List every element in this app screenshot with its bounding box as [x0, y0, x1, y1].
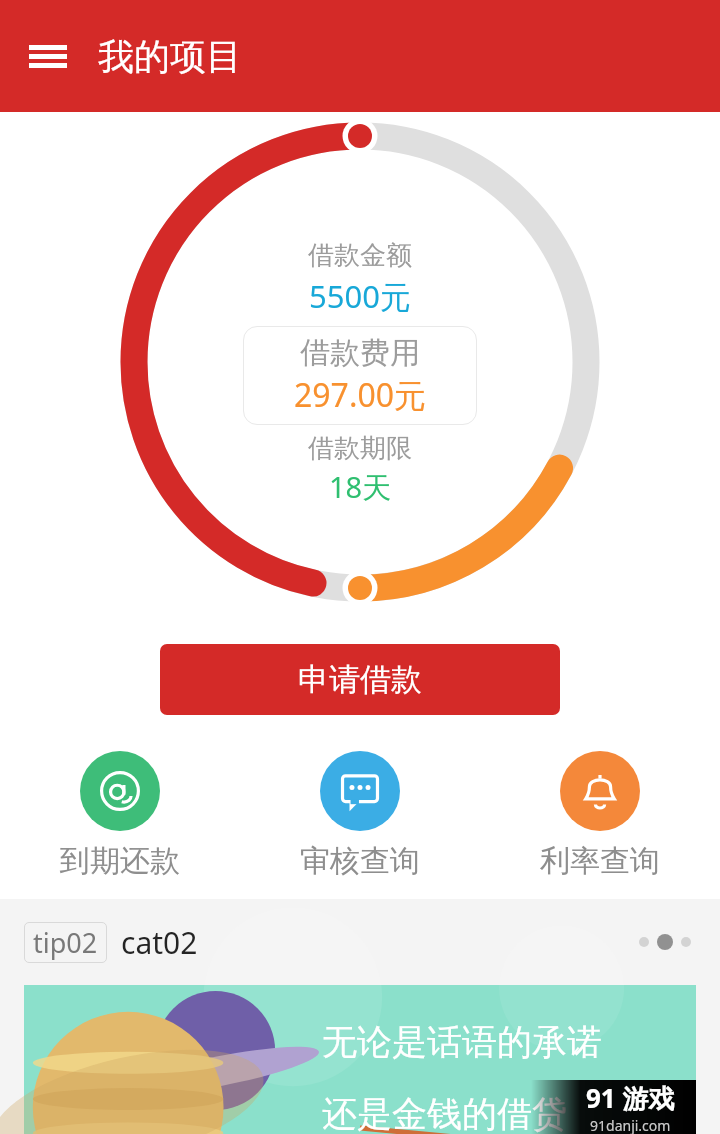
staticText: 审核查询: [300, 842, 420, 880]
staticText: 借款金额: [308, 239, 412, 272]
button[interactable]: 审核查询: [240, 751, 480, 880]
button[interactable]: 申请借款: [160, 644, 560, 715]
staticText: 297.00元: [294, 373, 427, 417]
staticText: 借款期限: [308, 432, 412, 465]
staticText: 还是金钱的借贷: [322, 1092, 567, 1134]
staticText: cat02: [121, 922, 198, 963]
staticText: 借款费用: [300, 334, 420, 372]
button[interactable]: Promotional banner: [24, 985, 696, 1134]
staticText: 18天: [329, 467, 392, 507]
button[interactable]: Open navigation menu: [18, 26, 78, 86]
staticText: 91 游戏: [586, 1080, 675, 1116]
button[interactable]: [634, 933, 696, 951]
staticText: 5500元: [309, 275, 411, 317]
staticText: 我的项目: [98, 34, 242, 79]
staticText: tip02: [33, 924, 98, 961]
button[interactable]: 到期还款: [0, 751, 240, 880]
staticText: 利率查询: [540, 842, 660, 880]
button[interactable]: 利率查询: [480, 751, 720, 880]
staticText: 申请借款: [298, 660, 422, 699]
staticText: 到期还款: [60, 842, 180, 880]
button[interactable]: tip02: [33, 924, 98, 961]
staticText: 91danji.com: [590, 1116, 671, 1134]
staticText: 无论是话语的承诺: [322, 1020, 602, 1064]
